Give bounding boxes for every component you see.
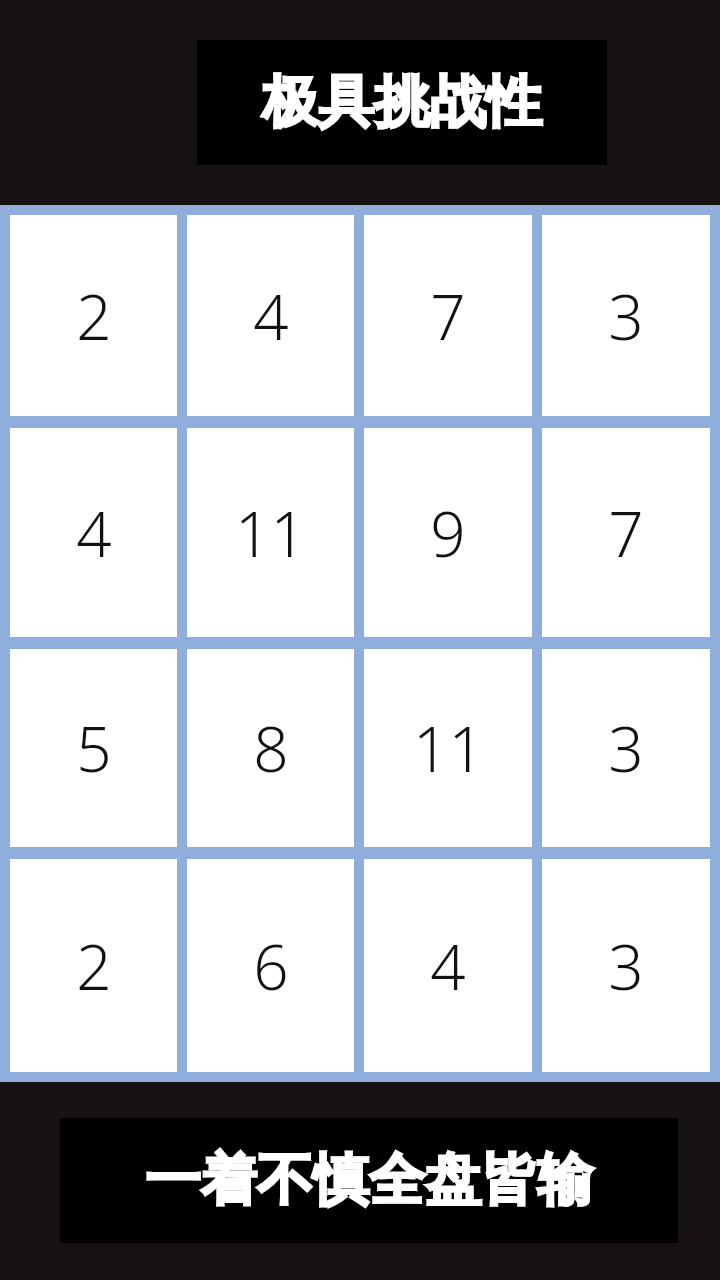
staticText: 6	[253, 924, 289, 1008]
button[interactable]: 11	[187, 428, 354, 637]
button[interactable]: 9	[364, 428, 532, 637]
button[interactable]: 7	[364, 215, 532, 416]
button[interactable]: 4	[364, 859, 532, 1072]
button[interactable]: 4	[187, 215, 354, 416]
button[interactable]: 2	[10, 215, 177, 416]
button[interactable]: 3	[542, 215, 710, 416]
staticText: 5	[76, 706, 112, 790]
button[interactable]: 极具挑战性	[197, 40, 607, 165]
button[interactable]: 3	[542, 649, 710, 847]
button[interactable]: 4	[10, 428, 177, 637]
staticText: 9	[430, 491, 466, 575]
staticText: 4	[430, 924, 466, 1008]
staticText: 3	[608, 924, 644, 1008]
button[interactable]: 3	[542, 859, 710, 1072]
staticText: 7	[430, 274, 466, 358]
button[interactable]: 8	[187, 649, 354, 847]
staticText: 极具挑战性	[262, 67, 542, 138]
staticText: 4	[253, 274, 289, 358]
button[interactable]: 11	[364, 649, 532, 847]
staticText: 2	[76, 924, 112, 1008]
button[interactable]: 6	[187, 859, 354, 1072]
staticText: 8	[253, 706, 289, 790]
staticText: 7	[608, 491, 644, 575]
button[interactable]: 一着不慎全盘皆输	[60, 1118, 678, 1243]
staticText: 一着不慎全盘皆输	[145, 1145, 593, 1216]
staticText: 11	[413, 706, 484, 790]
staticText: 2	[76, 274, 112, 358]
button[interactable]: 2	[10, 859, 177, 1072]
staticText: 3	[608, 706, 644, 790]
button[interactable]: 5	[10, 649, 177, 847]
staticText: 3	[608, 274, 644, 358]
staticText: 11	[235, 491, 306, 575]
staticText: 4	[76, 491, 112, 575]
button[interactable]: 7	[542, 428, 710, 637]
